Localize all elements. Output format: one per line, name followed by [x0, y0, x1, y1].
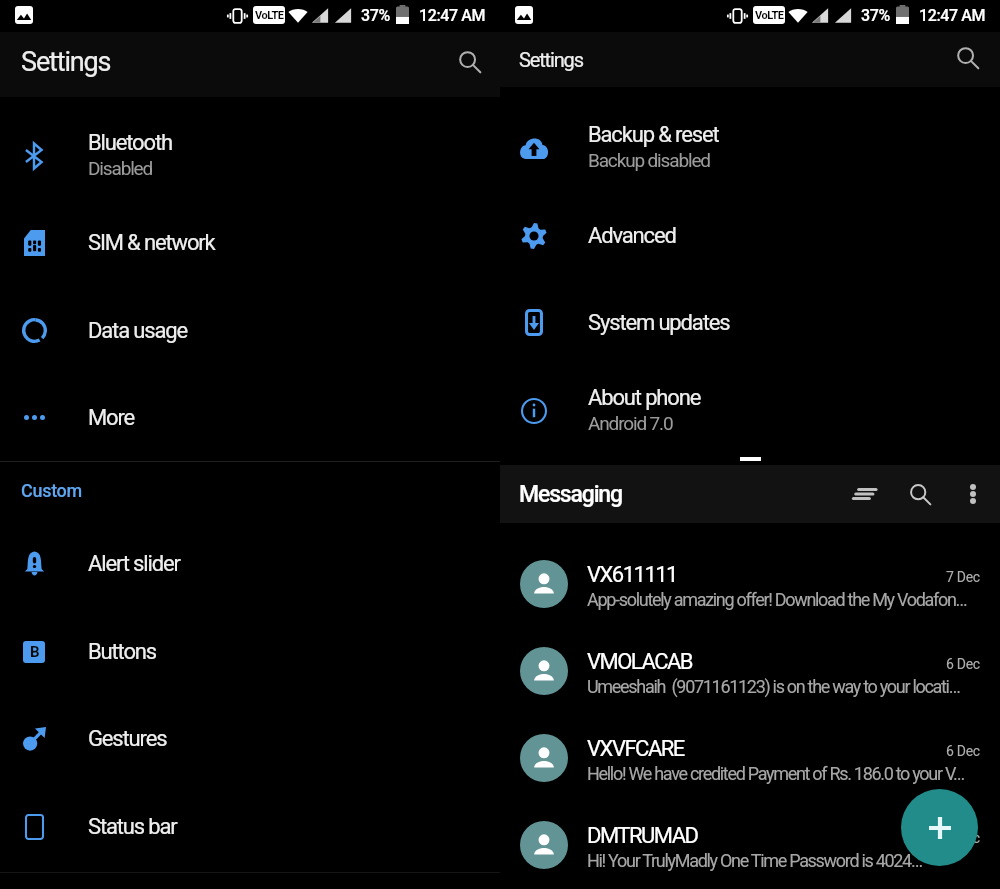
staticText: Data usage: [88, 318, 187, 344]
staticText: VoLTE: [255, 9, 284, 22]
staticText: More: [88, 405, 135, 431]
staticText: 6 Dec: [946, 830, 980, 846]
button[interactable]: Search: [900, 474, 940, 514]
button[interactable]: Filter: [844, 474, 884, 514]
staticText: 37%: [861, 6, 890, 25]
staticText: 12:47 AM: [419, 6, 485, 25]
staticText: Backup & reset: [588, 122, 719, 148]
button[interactable]: VMOLACAB: [500, 628, 1000, 715]
button[interactable]: Search: [948, 38, 988, 78]
staticText: 37%: [361, 6, 390, 25]
staticText: VoLTE: [755, 9, 784, 22]
staticText: SIM & network: [88, 230, 215, 256]
staticText: 6 Dec: [946, 656, 980, 672]
staticText: Gestures: [88, 726, 167, 752]
staticText: DMTRUMAD: [587, 823, 698, 849]
button[interactable]: Backup & reset: [500, 104, 1000, 191]
staticText: Buttons: [88, 639, 157, 665]
button[interactable]: SIM & network: [0, 199, 500, 286]
button[interactable]: Status bar: [0, 783, 500, 870]
staticText: About phone: [588, 385, 701, 411]
button[interactable]: About phone: [500, 367, 1000, 454]
staticText: 6 Dec: [946, 743, 980, 759]
staticText: VXVFCARE: [587, 736, 684, 762]
staticText: Backup disabled: [588, 149, 710, 171]
button[interactable]: VX611111: [500, 541, 1000, 628]
staticText: Alert slider: [88, 551, 180, 577]
button[interactable]: DMTRUMAD: [500, 802, 1000, 889]
staticText: Advanced: [588, 223, 676, 249]
staticText: Hi! Your TrulyMadly One Time Password is…: [587, 850, 980, 871]
staticText: Custom: [21, 480, 82, 501]
button[interactable]: Gestures: [0, 695, 500, 782]
button[interactable]: More: [0, 374, 500, 461]
staticText: Android 7.0: [588, 412, 673, 434]
staticText: 7 Dec: [946, 569, 980, 585]
button[interactable]: Alert slider: [0, 520, 500, 607]
staticText: B: [30, 643, 39, 661]
button[interactable]: Search: [450, 42, 490, 82]
button[interactable]: Data usage: [0, 287, 500, 374]
staticText: Status bar: [88, 814, 177, 840]
staticText: System updates: [588, 310, 730, 336]
staticText: 12:47 AM: [919, 6, 985, 25]
staticText: Hello! We have credited Payment of Rs. 1…: [587, 763, 980, 784]
button[interactable]: More options: [953, 474, 993, 514]
staticText: Bluetooth: [88, 130, 172, 156]
staticText: App-solutely amazing offer! Download the…: [587, 589, 980, 610]
button[interactable]: B: [0, 608, 500, 695]
staticText: Settings: [21, 46, 111, 78]
button[interactable]: Bluetooth: [0, 112, 500, 199]
staticText: Disabled: [88, 157, 153, 179]
staticText: Umeeshaih (9071161123) is on the way to …: [587, 676, 980, 697]
staticText: VMOLACAB: [587, 649, 693, 675]
button[interactable]: New message: [901, 789, 978, 866]
button[interactable]: VXVFCARE: [500, 715, 1000, 802]
staticText: Settings: [519, 48, 583, 71]
staticText: Messaging: [519, 481, 622, 508]
staticText: VX611111: [587, 562, 677, 588]
button[interactable]: Advanced: [500, 192, 1000, 279]
button[interactable]: System updates: [500, 279, 1000, 366]
